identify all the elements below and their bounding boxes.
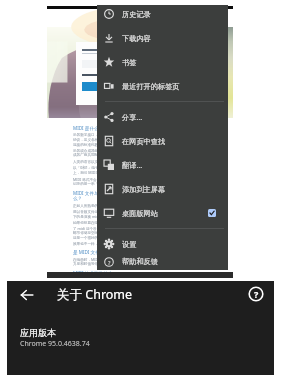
button[interactable]: 翻译… <box>97 153 228 177</box>
staticText: 了 midi 这个音乐数据的格式，这样就可以大 <box>73 226 144 231</box>
staticText: 是以音频文件记录下来的，而 MIDI 文件记录 <box>73 209 145 214</box>
staticText: 上，我们 MIDI 就是一种电脑音乐的语言。 <box>73 170 141 175</box>
staticText: 应用版本 <box>20 327 56 338</box>
staticText: 下的是演奏 midi 音乐的一串指令。 <box>73 214 130 219</box>
staticText: 关于 Chrome <box>57 286 133 303</box>
staticText: MIDI 格式不会包含任何的声音资料，它只是 <box>73 177 144 182</box>
staticText: 桌面版网站 <box>122 209 158 218</box>
staticText: 以「0和1」电子讯号来表达。在电脑的世界 <box>73 165 142 170</box>
staticText: 记录的是一串「指令」的讯息。 <box>73 182 124 187</box>
staticText: 帮助和反馈 <box>122 257 158 266</box>
button[interactable]: 桌面版网站 <box>97 201 228 225</box>
button[interactable]: 书签 <box>97 50 228 74</box>
button[interactable]: 设置 <box>97 232 228 256</box>
staticText: 乐器或合成器能够相互沟通，MIDI 技术由合 <box>73 148 144 153</box>
staticText: 书签 <box>122 58 137 67</box>
staticText: 正如人所熟悉的，我们平常在听的音乐大多 <box>73 204 142 209</box>
button[interactable]: ? <box>97 256 228 267</box>
staticText: MIDI 技术能做什么 <box>73 270 113 272</box>
staticText: MIDI 文件与 mp3 等音频文件有什 <box>73 190 143 196</box>
staticText: 如果你想要在电脑上播放音乐，就可以用到 <box>73 221 142 226</box>
staticText: 历史记录 <box>122 10 151 19</box>
staticText: 在编曲时，MIDI 可以记录每个音符的音高、 <box>73 257 144 262</box>
staticText: 效果也不一样，这也是 MIDI 的一大特色。 <box>73 241 141 246</box>
staticText: MIDI 是什么？ <box>73 125 104 131</box>
staticText: 添加到主屏幕 <box>122 185 166 194</box>
staticText: 在网页中查找 <box>122 137 166 146</box>
button[interactable]: 下载内容 <box>97 26 228 50</box>
staticText: Chrome 95.0.4638.74 <box>20 339 90 349</box>
button[interactable]: Back <box>19 287 34 302</box>
staticText: 设置 <box>122 240 137 249</box>
staticText: ? <box>108 259 111 266</box>
button[interactable]: 分享… <box>97 105 228 129</box>
button[interactable]: 添加到主屏幕 <box>97 177 228 201</box>
staticText: 力度和时值等信息，便于后期编辑修改。 <box>73 262 138 267</box>
button[interactable]: Help <box>248 286 264 302</box>
staticText: 最近打开的标签页 <box>122 82 180 91</box>
staticText: 协议，定义各种电子乐器、电脑等设备彼此 <box>73 138 142 143</box>
button[interactable]: 在网页中查找 <box>97 129 228 153</box>
staticText: 成器厂商共同制定。 <box>73 153 106 158</box>
staticText: 人类的语言以文字来表达，而电脑的语言则 <box>73 160 142 165</box>
button[interactable]: 最近打开的标签页 <box>97 74 228 98</box>
staticText: 这是一个很好的选择，不同的合成器播放的 <box>73 236 142 241</box>
staticText: 连接的标准化数字接口，让不同厂牌的电子 <box>73 143 142 148</box>
button[interactable]: 历史记录 <box>97 2 228 26</box>
staticText: 翻译… <box>122 160 143 170</box>
staticText: 幅节省储存空间，同时也保有很高的音质， <box>73 231 142 236</box>
staticText: ? <box>254 288 259 300</box>
staticText: 么？ <box>73 196 83 202</box>
staticText: 下载内容 <box>122 34 151 43</box>
staticText: 分享… <box>122 112 143 122</box>
staticText: 乐器数字接口，是一个工业标准的电子通信 <box>73 133 142 138</box>
staticText: 是 MIDI 文件格式能做什么 <box>73 249 128 255</box>
